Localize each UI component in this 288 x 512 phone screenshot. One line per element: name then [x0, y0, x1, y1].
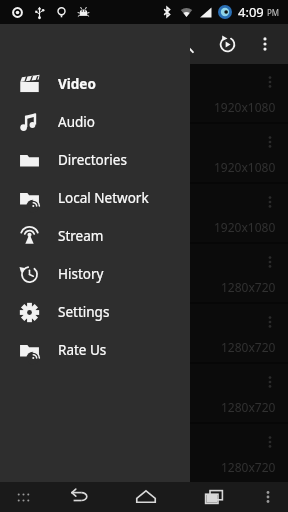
- staticText: 1280x720: [221, 339, 276, 355]
- button[interactable]: 3834.mp: [0, 244, 288, 302]
- button[interactable]: 4149.mp: [0, 304, 288, 362]
- staticText: 1920x1080: [214, 219, 276, 235]
- button[interactable]: Settings: [0, 293, 190, 331]
- button[interactable]: Recents: [194, 482, 234, 512]
- staticText: 3834.mp: [14, 254, 76, 274]
- button[interactable]: Back: [58, 482, 98, 512]
- button[interactable]: 4054.mp: [0, 64, 288, 122]
- staticText: Stream: [58, 227, 104, 245]
- staticText: Settings: [58, 303, 110, 321]
- staticText: History: [58, 265, 104, 283]
- button[interactable]: History: [0, 255, 190, 293]
- staticText: Local Network: [58, 189, 149, 207]
- button[interactable]: More options: [256, 188, 284, 216]
- staticText: PM: [267, 7, 280, 18]
- button[interactable]: More options: [256, 128, 284, 156]
- button[interactable]: More options: [256, 248, 284, 276]
- staticText: Video: [58, 75, 96, 93]
- button[interactable]: More options: [248, 27, 282, 61]
- staticText: Audio: [58, 113, 95, 131]
- staticText: Directories: [58, 151, 127, 169]
- staticText: 1920x1080: [214, 159, 276, 175]
- button[interactable]: 4802.mp: [0, 364, 288, 422]
- staticText: 1280x720: [221, 399, 276, 415]
- button[interactable]: More options: [256, 428, 284, 456]
- staticText: 4:09: [238, 3, 264, 21]
- button[interactable]: Search: [166, 25, 204, 63]
- button[interactable]: 5005.mp: [0, 424, 288, 482]
- staticText: 1280x720: [221, 459, 276, 475]
- staticText: Rate Us: [58, 341, 107, 359]
- staticText: 1280x720: [221, 279, 276, 295]
- button[interactable]: Video: [0, 65, 190, 103]
- staticText: 4848.mp: [14, 194, 76, 214]
- button[interactable]: Home: [126, 482, 166, 512]
- button[interactable]: 4848.mp: [0, 184, 288, 242]
- button[interactable]: 4740.mp: [0, 124, 288, 182]
- staticText: 1920x1080: [214, 99, 276, 115]
- button[interactable]: More options: [256, 308, 284, 336]
- button[interactable]: More options: [256, 68, 284, 96]
- button[interactable]: Stream: [0, 217, 190, 255]
- button[interactable]: More options: [256, 368, 284, 396]
- button[interactable]: Apps: [8, 482, 38, 512]
- button[interactable]: Directories: [0, 141, 190, 179]
- button[interactable]: Menu: [254, 483, 282, 511]
- button[interactable]: Refresh: [208, 25, 246, 63]
- button[interactable]: Rate Us: [0, 331, 190, 369]
- staticText: 4054.mp: [14, 74, 76, 94]
- staticText: 4149.mp: [14, 314, 76, 334]
- button[interactable]: Audio: [0, 103, 190, 141]
- button[interactable]: Local Network: [0, 179, 190, 217]
